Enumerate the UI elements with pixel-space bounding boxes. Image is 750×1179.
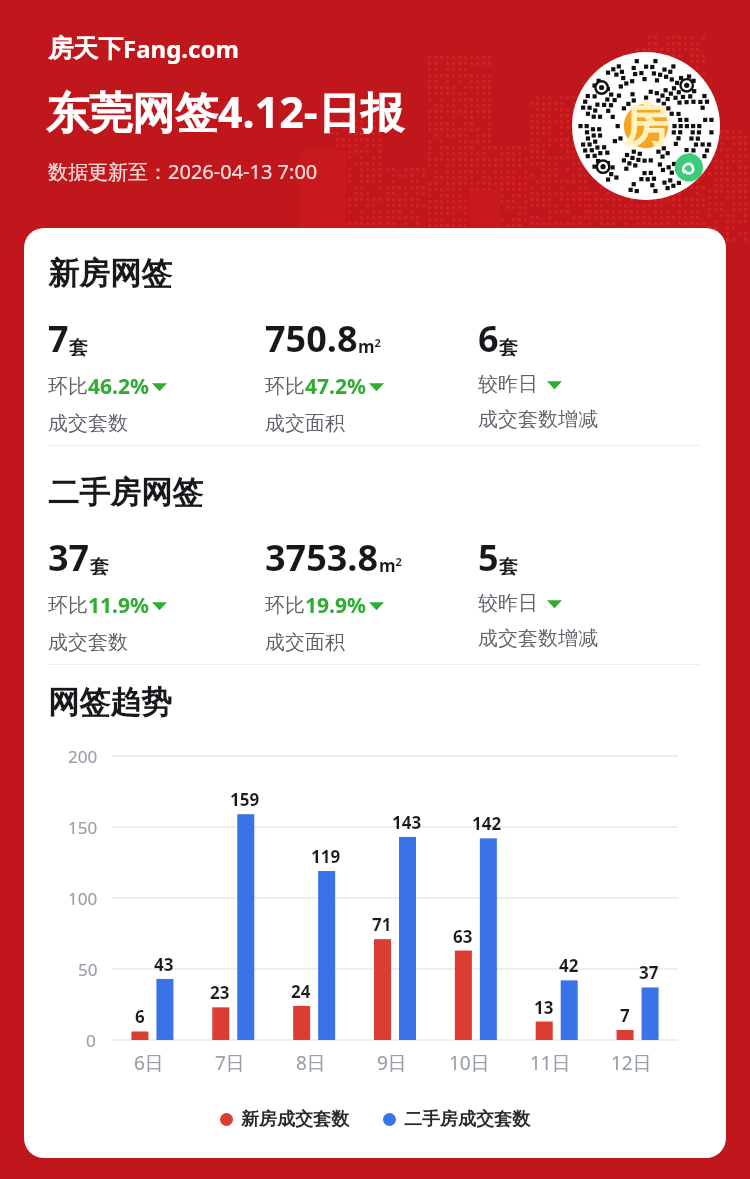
staticText: 新房成交套数 [241,1108,349,1131]
staticText: 119 [311,845,341,868]
staticText: 37 [48,533,90,582]
staticText: 24 [291,980,311,1003]
staticText: 12日 [611,1050,652,1076]
staticText: 143 [392,811,422,834]
staticText: 成交面积 [265,411,345,436]
staticText: 较昨日 [478,372,538,397]
staticText: 7日 [215,1050,245,1076]
staticText: 房天下 [48,33,123,64]
button[interactable]: 新房成交套数 [220,1108,349,1131]
staticText: 7 [620,1004,630,1027]
staticText: 8日 [296,1050,326,1076]
staticText: 42 [559,954,579,977]
staticText: 网签趋势 [48,683,172,722]
staticText: 环比 [265,593,305,618]
staticText: 43 [154,953,174,976]
staticText: 71 [372,913,392,936]
staticText: 46.2% [88,372,149,401]
staticText: 成交套数 [48,411,128,436]
staticText: 47.2% [305,372,366,401]
staticText: 37 [639,961,659,984]
staticText: 150 [68,816,98,839]
staticText: 6日 [134,1050,164,1076]
staticText: 套 [90,555,109,579]
staticText: 13 [534,996,554,1019]
staticText: m2 [358,335,381,358]
button[interactable]: 扫码二维码 [572,52,720,200]
staticText: 63 [453,925,473,948]
staticText: 二手房成交套数 [404,1108,530,1131]
staticText: 142 [472,812,502,835]
staticText: 房 [623,97,669,155]
staticText: 套 [69,336,88,360]
staticText: 200 [68,745,98,768]
staticText: 100 [68,887,98,910]
button[interactable]: 5 [478,533,688,651]
staticText: 二手房网签 [48,473,203,512]
button[interactable]: 37 [48,533,258,655]
staticText: 新房网签 [48,254,172,293]
staticText: 9日 [377,1050,407,1076]
staticText: 成交套数增减 [478,407,598,432]
staticText: 环比 [265,374,305,399]
staticText: 10日 [449,1050,490,1076]
staticText: 环比 [48,593,88,618]
staticText: 东莞网签4.12-日报 [46,82,404,141]
button[interactable]: 6 [478,314,688,432]
staticText: 6 [135,1005,145,1028]
staticText: 7 [48,314,69,363]
staticText: 6 [478,314,499,363]
button[interactable]: 750.8 [265,314,475,436]
staticText: 5 [478,533,499,582]
staticText: 0 [86,1029,96,1052]
staticText: 19.9% [305,591,366,620]
staticText: 成交套数 [48,630,128,655]
button[interactable]: 二手房成交套数 [383,1108,530,1131]
staticText: 50 [78,958,98,981]
staticText: 套 [499,555,518,579]
button[interactable]: 7 [48,314,258,436]
staticText: 成交面积 [265,630,345,655]
staticText: 11.9% [88,591,149,620]
staticText: 159 [230,788,260,811]
staticText: 3753.8 [265,533,379,582]
staticText: 11日 [530,1050,571,1076]
staticText: 23 [210,981,230,1004]
staticText: 套 [499,336,518,360]
button[interactable]: 3753.8 [265,533,475,655]
staticText: Fang.com [123,32,239,65]
staticText: 数据更新至：2026-04-13 7:00 [48,158,318,185]
staticText: 较昨日 [478,591,538,616]
staticText: 成交套数增减 [478,626,598,651]
staticText: 750.8 [265,314,358,363]
staticText: m2 [379,554,402,577]
staticText: 环比 [48,374,88,399]
